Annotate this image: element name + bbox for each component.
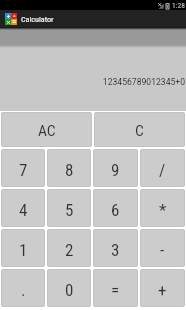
button[interactable]: 5	[46, 188, 92, 228]
button[interactable]: 4	[0, 188, 46, 228]
button[interactable]: AC	[0, 111, 93, 148]
staticText: 2	[65, 240, 74, 260]
staticText: 123456789012345+0	[102, 77, 185, 87]
staticText: /	[159, 160, 166, 180]
staticText: 1	[19, 240, 28, 260]
staticText: 8	[65, 160, 74, 180]
button[interactable]: /	[139, 148, 186, 188]
staticText: *	[159, 200, 167, 220]
button[interactable]: 7	[0, 148, 46, 188]
button[interactable]: 2	[46, 228, 92, 268]
staticText: 1:28	[172, 1, 185, 10]
button[interactable]: 6	[92, 188, 139, 228]
button[interactable]: 0	[46, 268, 92, 308]
button[interactable]: 8	[46, 148, 92, 188]
staticText: 3	[111, 240, 120, 260]
button[interactable]: =	[92, 268, 139, 308]
button[interactable]: +	[139, 268, 186, 308]
staticText: .	[21, 280, 26, 300]
button[interactable]: 9	[92, 148, 139, 188]
staticText: AC	[38, 122, 56, 140]
button[interactable]: .	[0, 268, 46, 308]
staticText: 6	[111, 200, 120, 220]
button[interactable]: -	[139, 228, 186, 268]
staticText: 0	[65, 280, 74, 300]
staticText: =	[111, 280, 120, 300]
staticText: C	[135, 122, 144, 140]
button[interactable]: C	[93, 111, 186, 148]
button[interactable]: 3	[92, 228, 139, 268]
staticText: 9	[111, 160, 120, 180]
staticText: 4	[19, 200, 28, 220]
staticText: Calculator	[21, 14, 54, 23]
staticText: 5	[65, 200, 74, 220]
staticText: +	[158, 280, 167, 300]
staticText: 7	[19, 160, 28, 180]
button[interactable]: 1	[0, 228, 46, 268]
button[interactable]: *	[139, 188, 186, 228]
staticText: -	[160, 240, 165, 260]
